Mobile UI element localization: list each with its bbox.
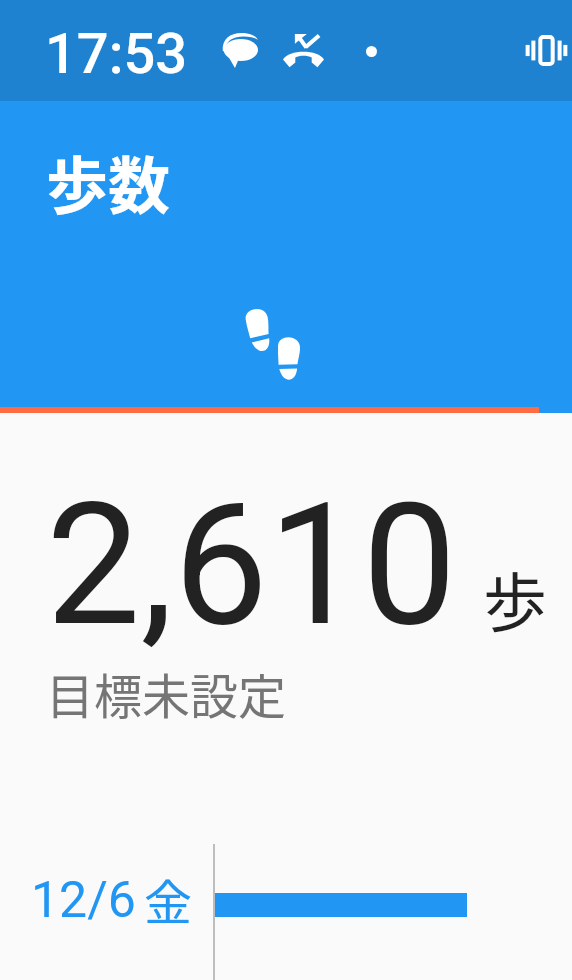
button[interactable]: 12/6 <box>0 844 572 980</box>
other: Missed call <box>283 33 324 68</box>
staticText: 12/6 <box>31 871 136 930</box>
staticText: 目標未設定 <box>46 658 287 728</box>
staticText: 2,610 <box>46 467 457 664</box>
staticText: 歩数 <box>46 137 171 227</box>
other: Messages <box>222 33 258 68</box>
staticText: 17:53 <box>45 21 188 87</box>
button[interactable]: 2,610 <box>0 413 572 844</box>
other: Vibrate <box>526 35 567 66</box>
staticText: 歩 <box>483 552 547 645</box>
staticText: 金 <box>144 864 193 934</box>
